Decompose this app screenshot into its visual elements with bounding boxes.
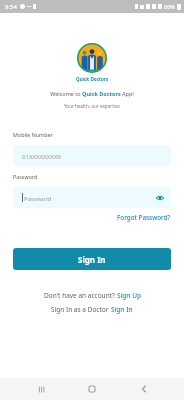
staticText: 60% (164, 3, 175, 10)
staticText: Your health, our expertise (64, 103, 120, 109)
staticText: 9:54 (5, 3, 17, 11)
staticText: Password (13, 173, 38, 180)
button[interactable]: Password (13, 187, 171, 208)
staticText: Forgot Password? (117, 213, 171, 222)
staticText: Mobile Number (13, 131, 53, 138)
staticText: Sign In (111, 305, 133, 314)
staticText: Quick Doctors (76, 76, 109, 82)
staticText: Password (24, 194, 52, 202)
staticText: Sign Up (117, 291, 141, 300)
button[interactable]: Sign Up (117, 291, 141, 300)
staticText: Sign In as a Doctor (51, 305, 111, 314)
staticText: Welcome to Quick Doctors App! (50, 90, 134, 97)
staticText: Sign In (78, 254, 106, 265)
button[interactable]: Home (81, 378, 103, 400)
button[interactable]: Sign In (13, 248, 171, 270)
button[interactable]: Back (133, 378, 155, 400)
staticText: 01XXXXXXXXX (22, 152, 62, 160)
button[interactable]: Forgot Password? (117, 213, 171, 222)
button[interactable]: 01XXXXXXXXX (13, 145, 171, 166)
button[interactable]: Show password (155, 193, 165, 203)
staticText: Don't have an account? (44, 291, 117, 300)
button[interactable]: Sign In (111, 305, 133, 314)
button[interactable]: Recents (30, 378, 52, 400)
